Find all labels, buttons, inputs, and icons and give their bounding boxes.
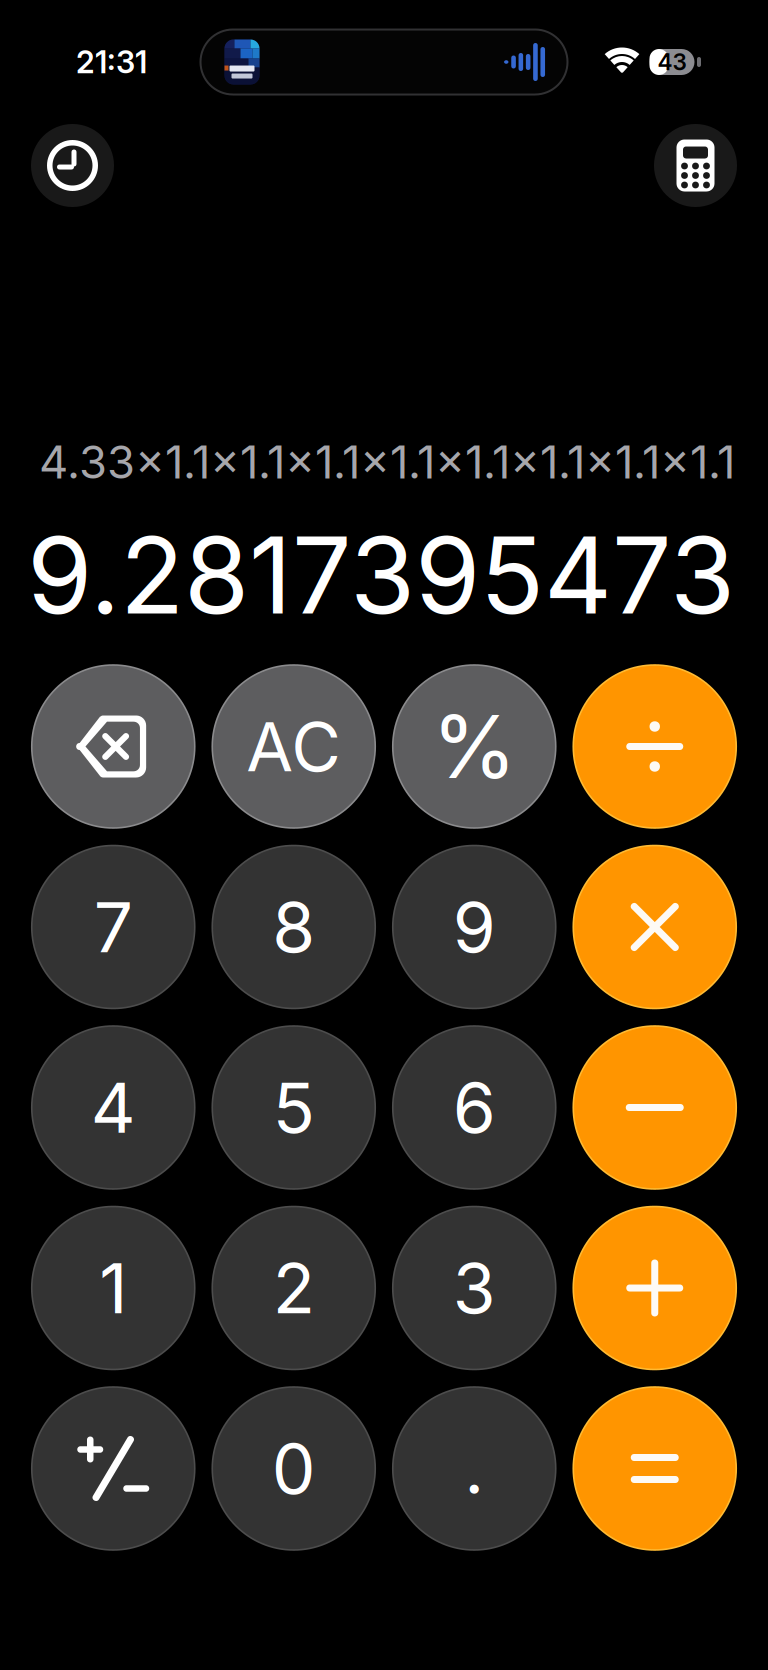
button[interactable]: 5 xyxy=(212,1026,375,1189)
staticText: 21:31 xyxy=(76,43,147,80)
staticText: % xyxy=(432,694,517,799)
button[interactable]: 0 xyxy=(212,1387,375,1550)
button[interactable]: Subtract xyxy=(573,1026,736,1189)
button[interactable]: 9 xyxy=(393,845,556,1008)
button[interactable]: 2 xyxy=(212,1206,375,1369)
staticText: 4 xyxy=(91,1066,136,1149)
staticText: 3 xyxy=(453,1246,496,1330)
button[interactable]: . xyxy=(393,1387,556,1550)
staticText: 6 xyxy=(453,1066,496,1149)
staticText: 4.33×1.1×1.1×1.1×1.1×1.1×1.1×1.1×1.1 xyxy=(39,435,735,490)
button[interactable]: 1 xyxy=(32,1206,195,1369)
staticText: 9 xyxy=(453,885,496,969)
staticText: 43 xyxy=(657,48,686,76)
button[interactable]: 3 xyxy=(393,1206,556,1369)
staticText: . xyxy=(464,1427,484,1510)
staticText: 7 xyxy=(94,885,133,969)
button[interactable]: History xyxy=(31,124,114,207)
button[interactable]: Add xyxy=(573,1206,736,1369)
staticText: 9.2817395473 xyxy=(27,512,735,639)
button[interactable]: Multiply xyxy=(573,845,736,1008)
button[interactable]: AC xyxy=(212,665,375,828)
staticText: AC xyxy=(246,705,341,788)
staticText: 5 xyxy=(273,1066,315,1149)
staticText: 8 xyxy=(272,885,315,969)
button[interactable]: % xyxy=(393,665,556,828)
button[interactable]: 7 xyxy=(32,845,195,1008)
button[interactable]: 6 xyxy=(393,1026,556,1189)
staticText: 0 xyxy=(272,1427,316,1510)
staticText: 2 xyxy=(273,1246,315,1330)
button[interactable]: Divide xyxy=(573,665,736,828)
button[interactable]: 8 xyxy=(212,845,375,1008)
button[interactable]: Calculator mode xyxy=(654,124,737,207)
button[interactable]: Equals xyxy=(573,1387,736,1550)
staticText: 1 xyxy=(99,1246,127,1330)
button[interactable]: Toggle sign xyxy=(32,1387,195,1550)
button[interactable]: Delete xyxy=(32,665,195,828)
button[interactable]: 4 xyxy=(32,1026,195,1189)
